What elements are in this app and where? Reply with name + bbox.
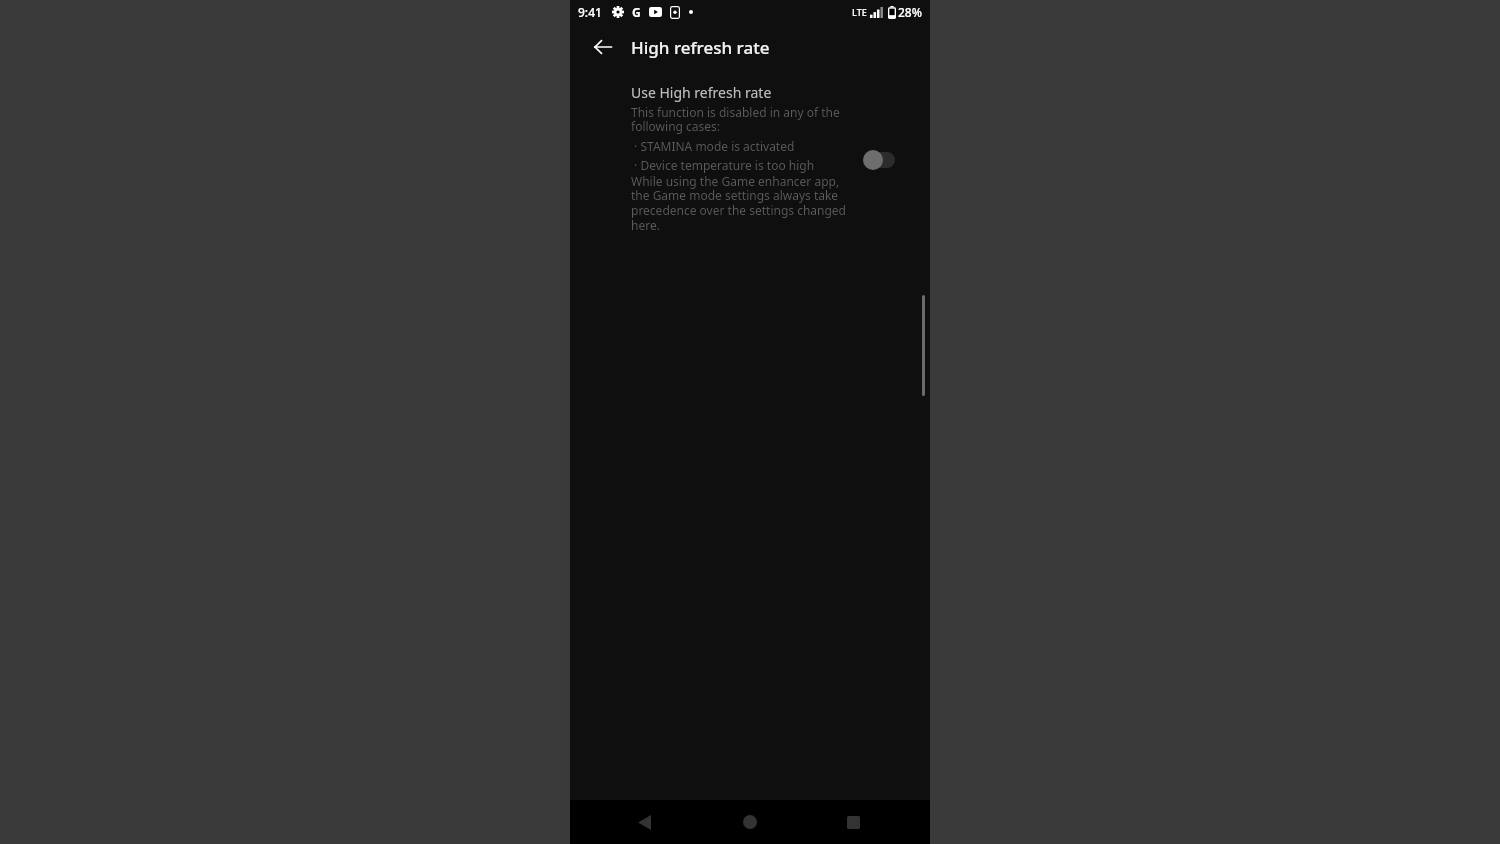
button[interactable]: Back: [620, 800, 668, 844]
staticText: · Device temperature is too high: [631, 157, 815, 173]
staticText: 9:41: [578, 4, 602, 20]
button[interactable]: Back: [581, 25, 625, 69]
staticText: · STAMINA mode is activated: [631, 138, 795, 154]
staticText: While using the Game enhancer app, the G…: [631, 173, 846, 234]
button[interactable]: Home: [726, 800, 774, 844]
staticText: G: [632, 4, 641, 20]
staticText: LTE: [852, 6, 867, 18]
button[interactable]: Recent apps: [829, 800, 877, 844]
button[interactable]: Use High refresh rate toggle: [856, 143, 902, 177]
staticText: 28%: [898, 4, 922, 20]
staticText: High refresh rate: [631, 36, 770, 59]
button[interactable]: Use High refresh rate: [570, 70, 930, 234]
staticText: This function is disabled in any of the …: [631, 104, 846, 135]
staticText: Use High refresh rate: [631, 83, 772, 102]
